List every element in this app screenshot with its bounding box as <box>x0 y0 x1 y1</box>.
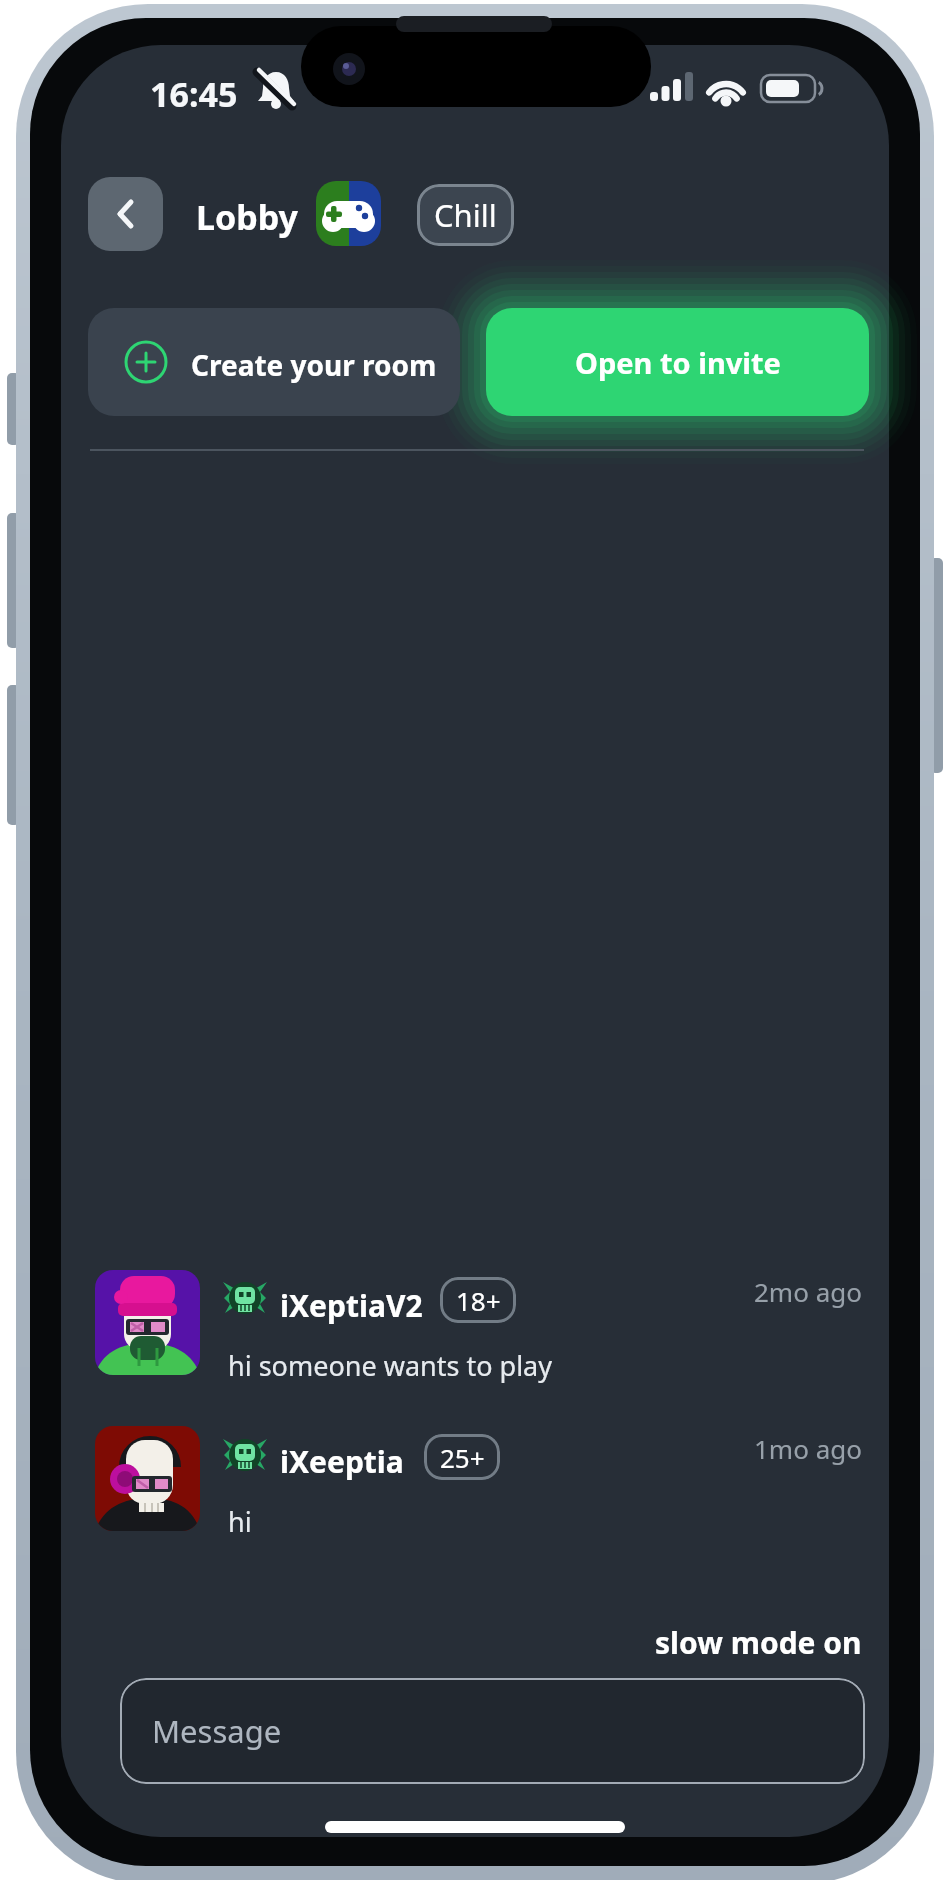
staticText: hi someone wants to play <box>228 1347 553 1384</box>
staticText: Open to invite <box>575 343 781 382</box>
staticText: 16:45 <box>150 71 238 117</box>
button[interactable]: 18+ <box>440 1277 516 1323</box>
button[interactable] <box>316 181 381 246</box>
staticText: Message <box>152 1710 282 1752</box>
staticText: slow mode on <box>655 1622 862 1663</box>
staticText: 1mo ago <box>754 1431 862 1466</box>
staticText: Chill <box>434 194 497 236</box>
staticText: 2mo ago <box>754 1274 862 1309</box>
button[interactable] <box>88 177 163 251</box>
staticText: iXeeptia <box>280 1441 404 1482</box>
staticText: Lobby <box>196 194 298 240</box>
button[interactable]: Message <box>120 1678 865 1784</box>
button[interactable]: 25+ <box>424 1434 500 1480</box>
button[interactable] <box>95 1270 200 1375</box>
button[interactable]: Open to invite <box>486 308 869 416</box>
button[interactable] <box>95 1426 200 1531</box>
button[interactable] <box>88 308 460 416</box>
button[interactable]: Chill <box>417 184 514 246</box>
staticText: hi <box>228 1503 252 1540</box>
staticText: iXeptiaV2 <box>280 1285 423 1326</box>
staticText: Create your room <box>191 346 437 384</box>
staticText: 25+ <box>440 1440 485 1475</box>
staticText: 18+ <box>456 1283 501 1318</box>
